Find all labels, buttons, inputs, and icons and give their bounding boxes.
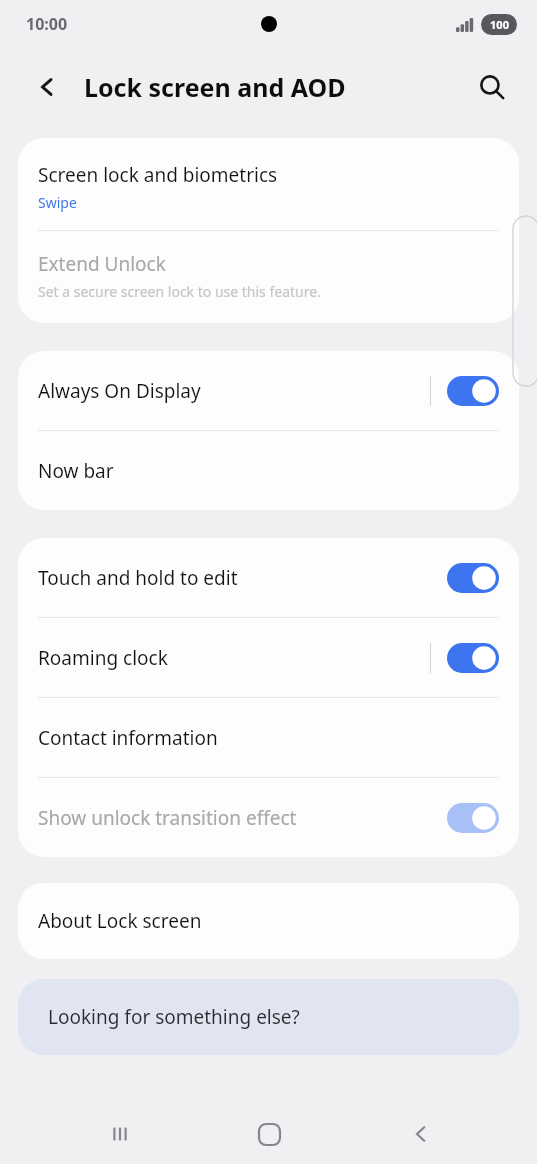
button[interactable]: Looking for something else?: [18, 979, 519, 1055]
staticText: Touch and hold to edit: [38, 565, 238, 591]
button[interactable]: Back: [22, 62, 72, 112]
button[interactable]: Screen lock and biometrics: [18, 138, 519, 230]
staticText: Looking for something else?: [48, 1004, 300, 1030]
button[interactable]: Search: [467, 62, 517, 112]
staticText: Roaming clock: [38, 645, 168, 671]
button[interactable]: Contact information: [18, 698, 519, 777]
button[interactable]: Now bar: [18, 431, 519, 510]
staticText: About Lock screen: [38, 908, 202, 934]
staticText: Screen lock and biometrics: [38, 162, 278, 188]
staticText: Show unlock transition effect: [38, 805, 297, 831]
button[interactable]: Roaming clock: [18, 618, 519, 697]
staticText: Contact information: [38, 725, 218, 751]
staticText: Now bar: [38, 458, 114, 484]
staticText: 100: [490, 17, 509, 32]
staticText: Always On Display: [38, 378, 201, 404]
staticText: Set a secure screen lock to use this fea…: [38, 282, 321, 301]
button[interactable]: Show unlock transition effect: [18, 778, 519, 857]
button[interactable]: Home: [245, 1110, 293, 1158]
staticText: Swipe: [38, 193, 77, 212]
button[interactable]: Recent apps: [96, 1110, 144, 1158]
button[interactable]: Touch and hold to edit: [18, 538, 519, 617]
button[interactable]: Back: [397, 1110, 445, 1158]
button[interactable]: About Lock screen: [18, 883, 519, 959]
button[interactable]: Extend Unlock: [18, 231, 519, 323]
button[interactable]: Always On Display: [18, 351, 519, 430]
staticText: Lock screen and AOD: [84, 70, 346, 104]
staticText: Extend Unlock: [38, 251, 166, 277]
staticText: 10:00: [26, 13, 68, 35]
